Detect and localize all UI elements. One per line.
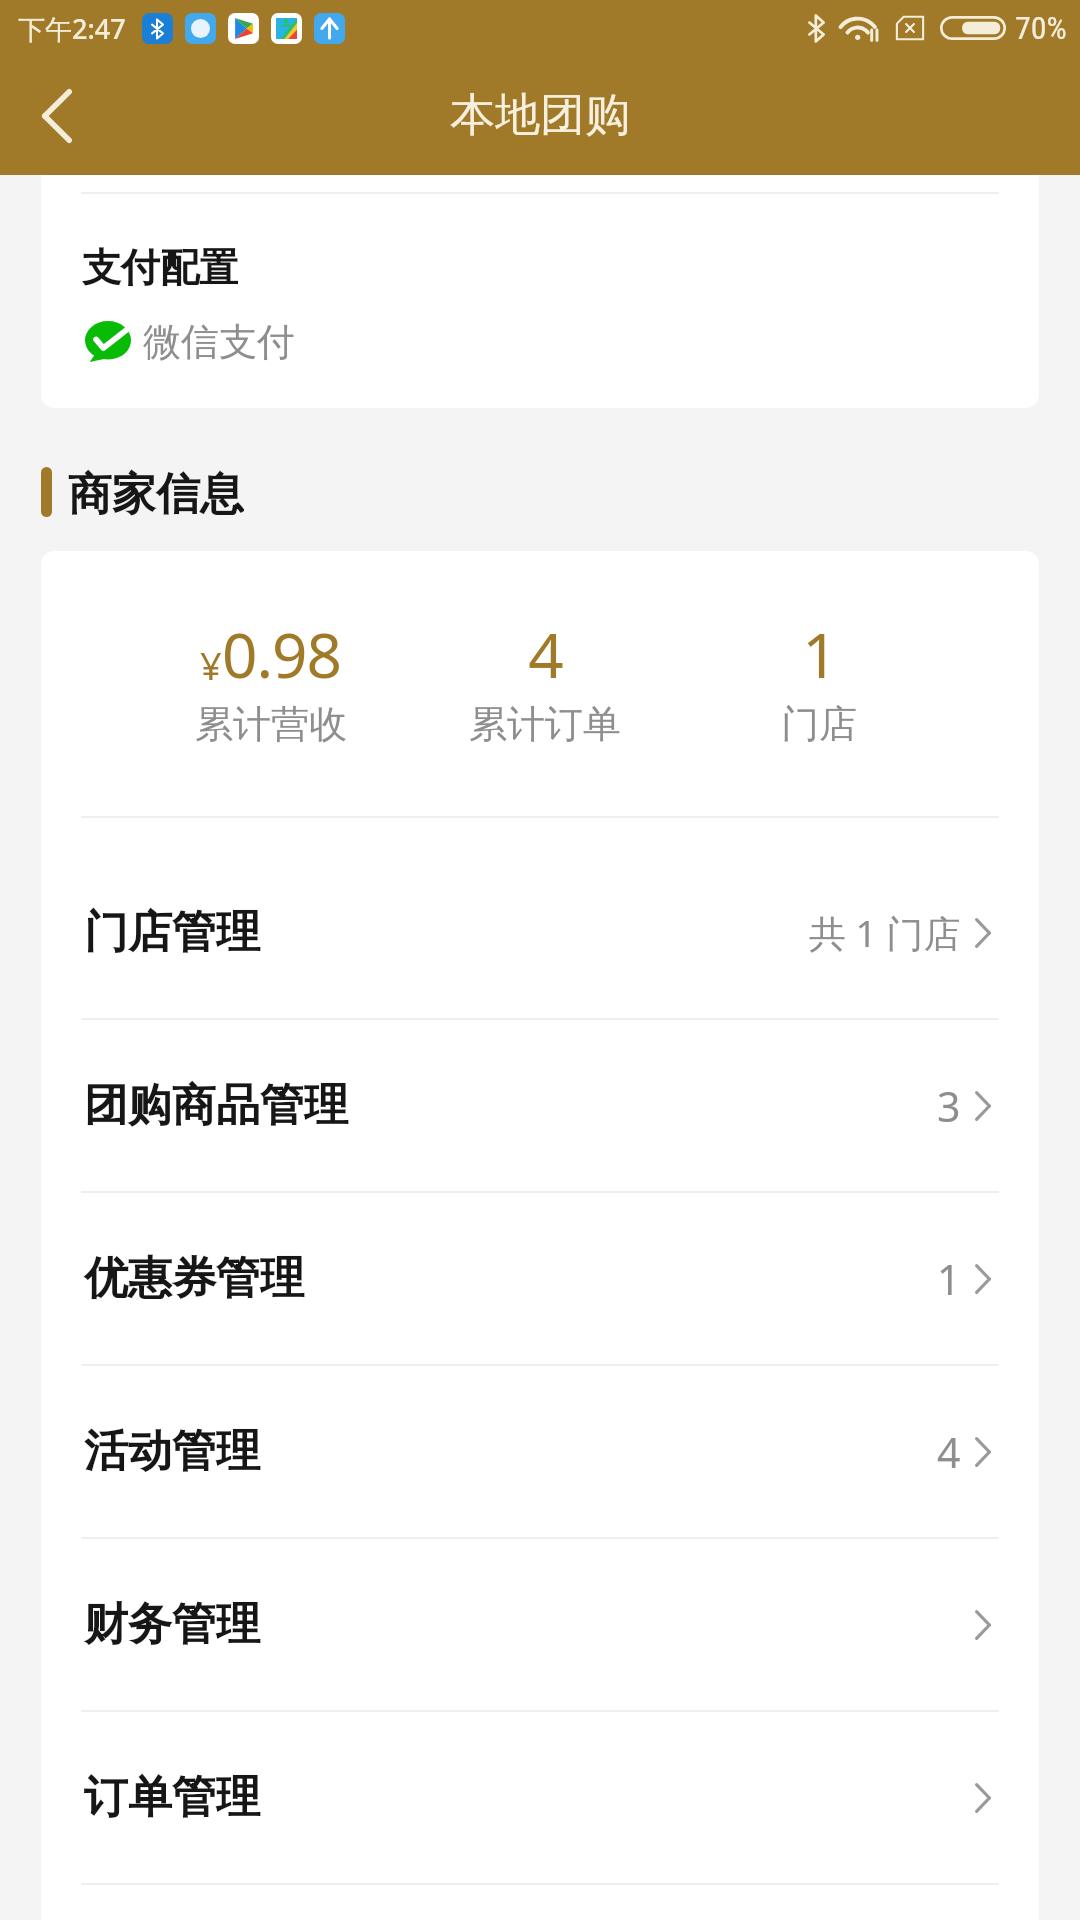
staticText: 3 xyxy=(937,1078,961,1134)
staticText: 门店管理 xyxy=(84,905,260,960)
staticText: 下午2:47 xyxy=(18,10,126,47)
button[interactable]: 订单管理 xyxy=(41,1712,1039,1883)
staticText: ¥ xyxy=(200,639,222,691)
staticText: 活动管理 xyxy=(84,1424,260,1479)
button[interactable]: 门店管理 xyxy=(41,847,1039,1018)
staticText: 订单管理 xyxy=(84,1770,260,1825)
staticText: 本地团购 xyxy=(450,87,630,144)
staticText: 团购商品管理 xyxy=(84,1078,348,1133)
staticText: 1 xyxy=(802,612,837,696)
staticText: 财务管理 xyxy=(84,1597,260,1652)
staticText: 4 xyxy=(937,1424,961,1480)
button[interactable]: 优惠券管理 xyxy=(41,1193,1039,1364)
staticText: 门店 xyxy=(781,700,857,748)
staticText: 70% xyxy=(1015,9,1067,47)
staticText: 1 xyxy=(937,1251,961,1307)
staticText: 优惠券管理 xyxy=(84,1251,304,1306)
staticText: 共 1 门店 xyxy=(809,907,961,958)
staticText: 累计营收 xyxy=(195,700,347,748)
staticText: 累计订单 xyxy=(469,700,621,748)
button[interactable]: 活动管理 xyxy=(41,1366,1039,1537)
staticText: 4 xyxy=(528,612,563,696)
staticText: 商家信息 xyxy=(68,467,244,517)
staticText: 0.98 xyxy=(222,612,342,696)
button[interactable]: 微信支付 xyxy=(85,320,295,368)
button[interactable]: 财务管理 xyxy=(41,1539,1039,1710)
button[interactable]: 团购商品管理 xyxy=(41,1020,1039,1191)
staticText: 微信支付 xyxy=(143,318,295,366)
staticText: 支付配置 xyxy=(82,243,238,292)
button[interactable]: Back xyxy=(10,69,104,163)
